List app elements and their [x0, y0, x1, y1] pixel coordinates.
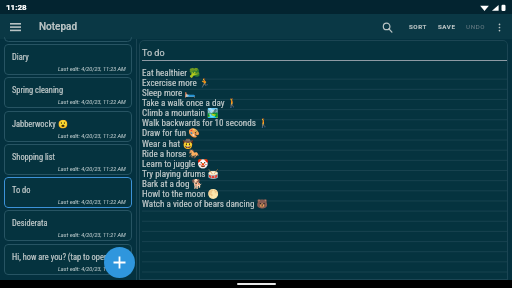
staticText: Hi, how are you? (tap to open) — [12, 252, 111, 262]
staticText: Try playing drums 🥁 — [142, 169, 219, 180]
button[interactable]: Menu — [4, 16, 26, 38]
staticText: Sleep more 🛏 — [142, 88, 196, 99]
button[interactable]: New note — [104, 247, 135, 278]
staticText: Watch a video of bears dancing 🐻 — [142, 199, 268, 210]
button[interactable]: Spring cleaning — [4, 77, 132, 108]
staticText: Last edit: 4/20/23, 11:23 AM — [58, 66, 126, 72]
button[interactable]: To do — [142, 48, 165, 59]
staticText: Last edit: 4/20/23, 11:22 AM — [58, 199, 126, 205]
button[interactable]: To do — [4, 177, 132, 208]
staticText: Walk backwards for 10 seconds 🚶 — [142, 118, 270, 129]
staticText: Learn to juggle 🤡 — [142, 159, 209, 170]
staticText: Climb a mountain 🏞 — [142, 108, 219, 119]
staticText: SAVE — [438, 23, 456, 30]
staticText: Howl to the moon 🌕 — [142, 189, 219, 200]
button[interactable]: Shopping list — [4, 144, 132, 175]
staticText: Draw for fun 🎨 — [142, 128, 200, 139]
staticText: Last edit: 4/20/23, 11:21 AM — [58, 266, 126, 272]
staticText: Bark at a dog 🐕 — [142, 179, 203, 190]
button[interactable]: Diary — [4, 44, 132, 75]
staticText: SORT — [409, 23, 427, 30]
button[interactable]: UNDO — [465, 19, 487, 34]
button[interactable]: Notepad — [39, 21, 78, 33]
staticText: To do — [12, 185, 31, 195]
staticText: Jabberwocky 😮 — [12, 119, 69, 129]
staticText: Last edit: 4/20/23, 11:22 AM — [58, 166, 126, 172]
staticText: Shopping list — [12, 152, 56, 162]
staticText: UNDO — [466, 23, 486, 30]
button[interactable]: SORT — [408, 19, 428, 34]
staticText: Spring cleaning — [12, 85, 64, 95]
staticText: Wear a hat 🤠 — [142, 139, 194, 150]
button[interactable]: Jabberwocky 😮 — [4, 111, 132, 142]
staticText: Eat healthier 🥦 — [142, 68, 201, 79]
staticText: Last edit: 4/20/23, 11:22 AM — [58, 99, 126, 105]
button[interactable]: More options — [490, 18, 508, 36]
staticText: 11:28 — [6, 3, 27, 12]
staticText: Desiderata — [12, 218, 48, 228]
button[interactable]: Search — [376, 16, 398, 38]
button[interactable]: Hi, how are you? (tap to open) — [4, 244, 132, 275]
button[interactable]: Eat healthier 🥦 — [142, 69, 508, 280]
staticText: Last edit: 4/20/23, 11:22 AM — [58, 133, 126, 139]
button[interactable]: SAVE — [437, 19, 457, 34]
staticText: Excercise more 🏃 — [142, 78, 211, 89]
staticText: Last edit: 4/20/23, 11:21 AM — [58, 232, 126, 238]
button[interactable]: Desiderata — [4, 210, 132, 241]
staticText: Ride a horse 🐎 — [142, 149, 200, 160]
staticText: Diary — [12, 52, 29, 62]
staticText: Take a walk once a day 🚶 — [142, 98, 238, 109]
